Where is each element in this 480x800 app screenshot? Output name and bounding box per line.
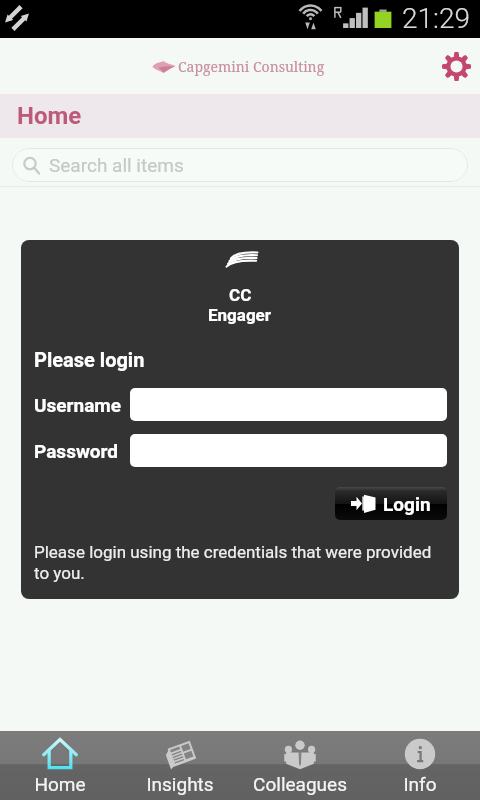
staticText: Capgemini Consulting <box>178 57 325 76</box>
staticText: Search all items <box>49 154 184 176</box>
staticText: Insights <box>146 773 214 795</box>
button[interactable]: Login <box>335 487 447 520</box>
button[interactable]: Settings <box>436 46 476 86</box>
button[interactable] <box>130 388 447 421</box>
staticText: Home <box>17 102 82 130</box>
staticText: Please login <box>34 348 145 371</box>
button[interactable]: Search all items <box>12 148 468 182</box>
staticText: Login <box>383 493 431 515</box>
staticText: 21:29 <box>402 2 471 35</box>
staticText: Colleagues <box>253 773 347 795</box>
other: Sync <box>4 5 30 31</box>
button[interactable]: Info <box>360 731 480 800</box>
button[interactable]: Colleagues <box>240 731 360 800</box>
button[interactable]: Insights <box>120 731 240 800</box>
staticText: Please login using the credentials that … <box>34 542 446 584</box>
staticText: Info <box>403 773 437 795</box>
staticText: Password <box>34 440 130 462</box>
staticText: Username <box>34 394 130 416</box>
button[interactable]: Home <box>0 731 120 800</box>
staticText: Engager <box>208 305 272 325</box>
staticText: Home <box>34 773 86 795</box>
staticText: CC <box>229 285 252 305</box>
button[interactable] <box>130 434 447 467</box>
